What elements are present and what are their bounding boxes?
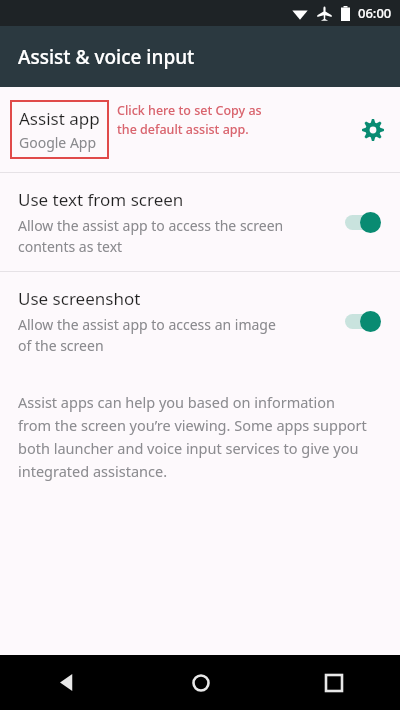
staticText: both launcher and voice input services t… [18,438,359,458]
staticText: Allow the assist app to access an image [18,315,276,334]
staticText: 06:00 [358,4,392,22]
button[interactable]: Home [134,655,267,710]
staticText: integrated assistance. [18,461,168,481]
staticText: contents as text [18,237,123,256]
button[interactable]: Assist app [0,87,400,172]
button[interactable]: Back [0,655,134,710]
staticText: Google App [19,133,97,152]
staticText: the default assist app. [117,121,249,138]
staticText: Click here to set Copy as [117,102,262,119]
staticText: from the screen you’re viewing. Some app… [18,415,367,435]
staticText: Assist apps can help you based on inform… [18,392,336,412]
button[interactable]: Assist app settings [346,103,400,157]
staticText: Use screenshot [18,287,141,310]
button[interactable]: Toggle Use text from screen [340,204,384,240]
staticText: Assist & voice input [18,44,195,70]
button[interactable]: Toggle Use screenshot [340,303,384,339]
button[interactable]: Use text from screen [0,173,400,271]
button[interactable]: Recent apps [267,655,400,710]
staticText: Assist app [19,107,100,130]
staticText: of the screen [18,336,104,355]
button[interactable]: Use screenshot [0,272,400,370]
staticText: Allow the assist app to access the scree… [18,216,284,235]
staticText: Use text from screen [18,188,184,211]
